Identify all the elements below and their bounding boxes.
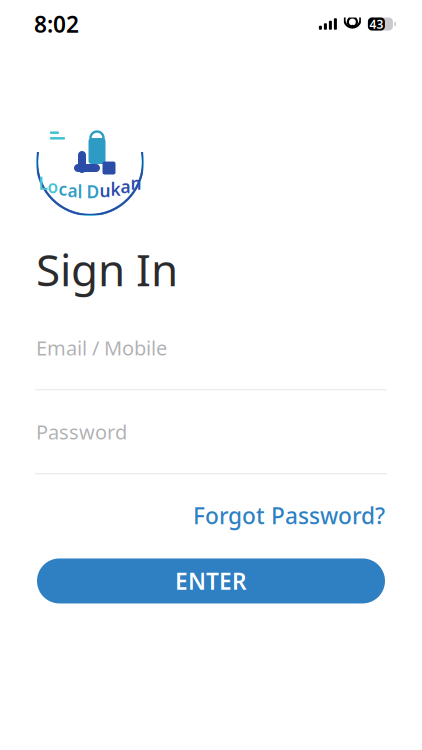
staticText: c xyxy=(58,177,67,200)
staticText: 8:02 xyxy=(34,9,79,39)
staticText: Password xyxy=(36,418,127,445)
staticText: L xyxy=(38,171,47,194)
staticText: n xyxy=(130,171,141,194)
staticText: a xyxy=(120,175,130,198)
staticText: 43 xyxy=(369,16,383,32)
staticText: Email / Mobile xyxy=(36,334,167,361)
staticText: Sign In xyxy=(36,240,178,298)
button[interactable]: Forgot Password? xyxy=(193,494,385,536)
staticText: u xyxy=(99,179,110,202)
staticText: Forgot Password? xyxy=(193,500,385,530)
staticText: D xyxy=(86,180,99,203)
staticText: o xyxy=(47,175,58,198)
staticText: k xyxy=(110,177,120,200)
button[interactable]: ENTER xyxy=(37,558,385,603)
staticText: ENTER xyxy=(175,566,247,596)
staticText: l xyxy=(77,180,82,203)
staticText: a xyxy=(67,179,77,202)
